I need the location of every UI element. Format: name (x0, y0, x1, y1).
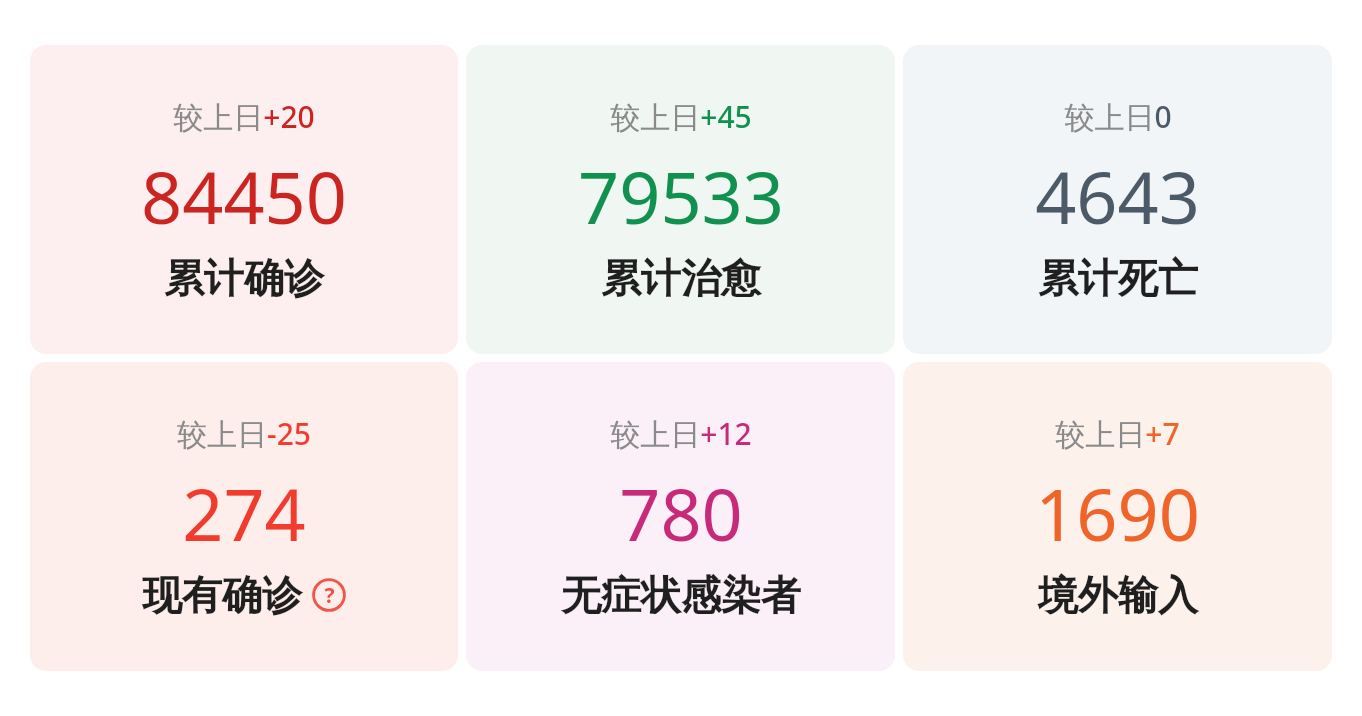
button[interactable]: 较上日-25 (30, 362, 458, 671)
staticText: 780 (619, 464, 743, 562)
staticText: 较上日-25 (177, 413, 311, 454)
staticText: 1690 (1035, 464, 1200, 562)
staticText: 境外输入 (1038, 570, 1198, 620)
button[interactable]: 较上日+7 (903, 362, 1332, 671)
staticText: 较上日+7 (1055, 413, 1180, 454)
button[interactable]: 较上日+20 (30, 45, 458, 354)
staticText: 274 (182, 464, 306, 562)
button[interactable]: 较上日+12 (466, 362, 895, 671)
staticText: 累计死亡 (1038, 253, 1198, 303)
staticText: 现有确诊 (142, 570, 302, 620)
staticText: 84450 (141, 147, 347, 245)
staticText: 累计确诊 (164, 253, 324, 303)
staticText: 较上日+45 (610, 96, 752, 137)
staticText: 无症状感染者 (561, 570, 801, 620)
staticText: 较上日+12 (610, 413, 752, 454)
button[interactable]: 较上日0 (903, 45, 1332, 354)
staticText: 累计治愈 (601, 253, 761, 303)
staticText: 较上日0 (1064, 96, 1172, 137)
button[interactable]: 较上日+45 (466, 45, 895, 354)
staticText: 79533 (578, 147, 784, 245)
staticText: 较上日+20 (173, 96, 315, 137)
staticText: 4643 (1035, 147, 1200, 245)
staticText: ? (324, 581, 335, 610)
button[interactable]: 说明 (312, 578, 346, 612)
